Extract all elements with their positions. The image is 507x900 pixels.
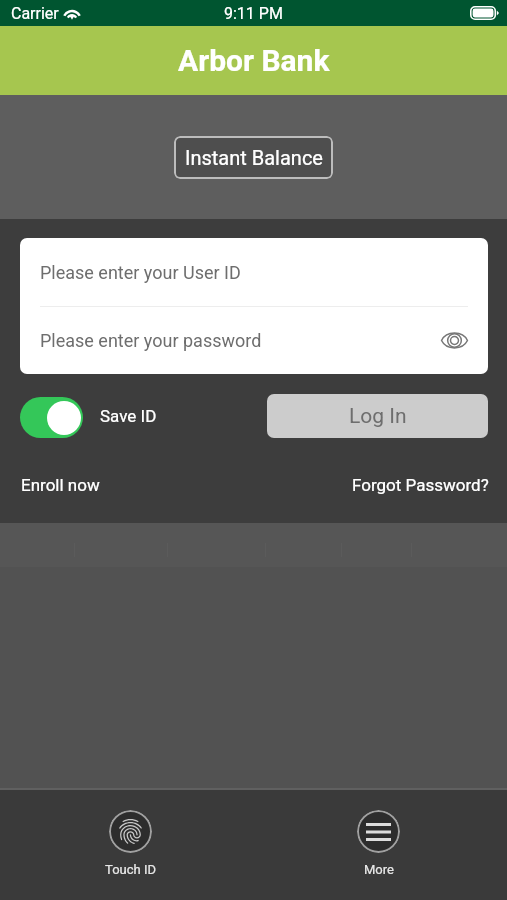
staticText: Arbor Bank — [178, 43, 330, 78]
button[interactable]: Show password — [434, 320, 474, 360]
staticText: More — [364, 862, 394, 877]
staticText: Touch ID — [105, 862, 156, 877]
button[interactable]: Log In — [267, 394, 488, 438]
button[interactable]: Instant Balance — [174, 136, 333, 179]
staticText: Please enter your User ID — [40, 262, 241, 283]
staticText: Enroll now — [21, 475, 100, 495]
button[interactable]: Save ID — [20, 397, 83, 438]
button[interactable]: Please enter your password — [20, 306, 488, 374]
staticText: 9:11 PM — [224, 4, 283, 23]
button[interactable]: Forgot Password? — [352, 471, 489, 499]
button[interactable]: More — [333, 810, 424, 877]
staticText: Log In — [349, 404, 407, 429]
button[interactable]: Touch ID — [85, 810, 176, 877]
staticText: Please enter your password — [40, 330, 262, 351]
staticText: Forgot Password? — [352, 475, 489, 495]
staticText: Instant Balance — [185, 146, 323, 169]
button[interactable]: Enroll now — [21, 471, 100, 499]
staticText: Carrier — [11, 4, 59, 23]
button[interactable]: Please enter your User ID — [20, 238, 488, 306]
staticText: Save ID — [100, 406, 157, 426]
